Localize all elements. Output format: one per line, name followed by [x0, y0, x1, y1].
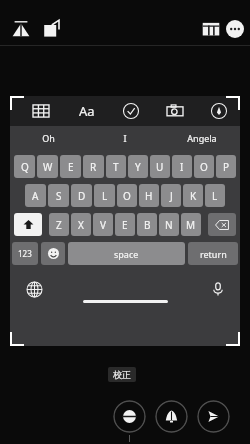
staticText: Y [135, 160, 141, 174]
staticText: H [145, 189, 153, 203]
button[interactable]: Shift [14, 213, 42, 236]
button[interactable]: M [181, 213, 201, 236]
button[interactable]: Layout [198, 16, 224, 42]
button[interactable]: J [161, 184, 181, 207]
button[interactable]: I [172, 155, 192, 178]
button[interactable]: Adjust [113, 400, 146, 433]
button[interactable]: More options [222, 16, 248, 42]
staticText: U [156, 160, 164, 174]
staticText: 校正 [113, 369, 131, 380]
button[interactable]: V [93, 213, 113, 236]
button[interactable]: space [68, 242, 185, 265]
staticText: X [78, 218, 84, 232]
button[interactable]: K [183, 184, 203, 207]
button[interactable]: 123 [12, 242, 38, 265]
button[interactable]: W [37, 155, 58, 178]
staticText: O [200, 160, 208, 174]
button[interactable]: L [205, 184, 225, 207]
button[interactable]: O [194, 155, 214, 178]
button[interactable]: S [48, 184, 69, 207]
button[interactable]: R [83, 155, 104, 178]
staticText: Oh [42, 132, 55, 144]
staticText: I [123, 132, 127, 144]
button[interactable]: Camera [162, 98, 188, 124]
button[interactable]: N [159, 213, 179, 236]
staticText: L [212, 189, 218, 203]
button[interactable]: I [86, 126, 163, 150]
button[interactable]: Markup [206, 98, 232, 124]
button[interactable]: Effects [155, 400, 188, 433]
staticText: P [223, 160, 230, 174]
button[interactable]: Check [118, 98, 144, 124]
staticText: O [123, 189, 131, 203]
staticText: W [43, 160, 53, 174]
button[interactable]: D [71, 184, 92, 207]
staticText: E [122, 218, 128, 232]
staticText: A [32, 189, 39, 203]
button[interactable]: Rotate [40, 16, 66, 42]
button[interactable]: Backspace [208, 213, 236, 236]
button[interactable]: A [25, 184, 46, 207]
button[interactable]: Send [197, 400, 230, 433]
staticText: E [68, 160, 74, 174]
staticText: Aa [79, 102, 95, 120]
button[interactable]: E [115, 213, 135, 236]
staticText: Angela [187, 132, 217, 144]
staticText: S [56, 189, 62, 203]
staticText: K [190, 189, 197, 203]
button[interactable]: T [106, 155, 126, 178]
button[interactable]: Y [128, 155, 148, 178]
staticText: V [100, 218, 106, 232]
button[interactable]: H [139, 184, 159, 207]
staticText: L [102, 189, 108, 203]
button[interactable]: Z [49, 213, 69, 236]
staticText: N [165, 218, 173, 232]
button[interactable]: Dictate [206, 277, 230, 301]
button[interactable]: P [216, 155, 236, 178]
staticText: 123 [18, 248, 32, 259]
button[interactable]: Emoji [41, 242, 65, 265]
button[interactable]: Change keyboard [22, 277, 46, 301]
button[interactable]: X [71, 213, 91, 236]
staticText: D [78, 189, 86, 203]
button[interactable]: Oh [10, 126, 86, 150]
staticText: R [90, 160, 97, 174]
button[interactable]: return [188, 242, 238, 265]
button[interactable]: Table [28, 98, 54, 124]
button[interactable]: 校正 [113, 369, 131, 380]
button[interactable]: E [60, 155, 81, 178]
staticText: Q [21, 160, 29, 174]
button[interactable]: Q [14, 155, 35, 178]
button[interactable]: Perspective [8, 16, 34, 42]
button[interactable]: O [117, 184, 137, 207]
staticText: M [186, 218, 196, 232]
staticText: return [200, 248, 227, 260]
staticText: Z [56, 218, 62, 232]
button[interactable]: B [137, 213, 157, 236]
button[interactable]: U [150, 155, 170, 178]
button[interactable]: Angela [163, 126, 240, 150]
staticText: T [113, 160, 119, 174]
button[interactable]: L [94, 184, 115, 207]
staticText: space [114, 248, 139, 260]
staticText: I [180, 160, 184, 174]
staticText: B [144, 218, 151, 232]
button[interactable]: Aa [74, 98, 100, 124]
staticText: J [170, 189, 173, 203]
